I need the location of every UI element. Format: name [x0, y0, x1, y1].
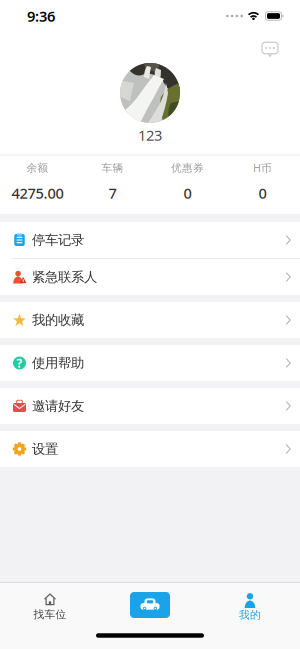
- staticText: 找车位: [33, 608, 66, 621]
- staticText: 0: [183, 183, 191, 203]
- staticText: 7: [108, 183, 116, 203]
- button[interactable]: 我的: [200, 583, 300, 649]
- staticText: 0: [258, 183, 266, 203]
- staticText: 我的收藏: [32, 312, 84, 328]
- staticText: 邀请好友: [32, 398, 84, 414]
- staticText: 停车记录: [32, 232, 84, 248]
- button[interactable]: 停车: [100, 583, 200, 649]
- staticText: 紧急联系人: [32, 269, 97, 285]
- button[interactable]: 消息: [262, 42, 278, 57]
- staticText: 我的: [239, 608, 261, 621]
- button[interactable]: 我的收藏: [0, 302, 300, 338]
- staticText: H币: [253, 161, 272, 175]
- button[interactable]: 停车记录: [0, 222, 300, 258]
- staticText: 123: [138, 125, 162, 145]
- staticText: 设置: [32, 441, 58, 457]
- staticText: 4275.00: [11, 183, 63, 203]
- staticText: ?: [16, 355, 22, 371]
- button[interactable]: ?: [0, 345, 300, 381]
- staticText: 余额: [26, 161, 48, 174]
- button[interactable]: 邀请好友: [0, 388, 300, 424]
- staticText: 9:36: [27, 6, 55, 26]
- button[interactable]: 设置: [0, 431, 300, 467]
- button[interactable]: 紧急联系人: [0, 259, 300, 295]
- staticText: 使用帮助: [32, 355, 84, 371]
- staticText: 车辆: [101, 161, 123, 174]
- staticText: 优惠券: [171, 161, 204, 174]
- button[interactable]: 找车位: [0, 583, 100, 649]
